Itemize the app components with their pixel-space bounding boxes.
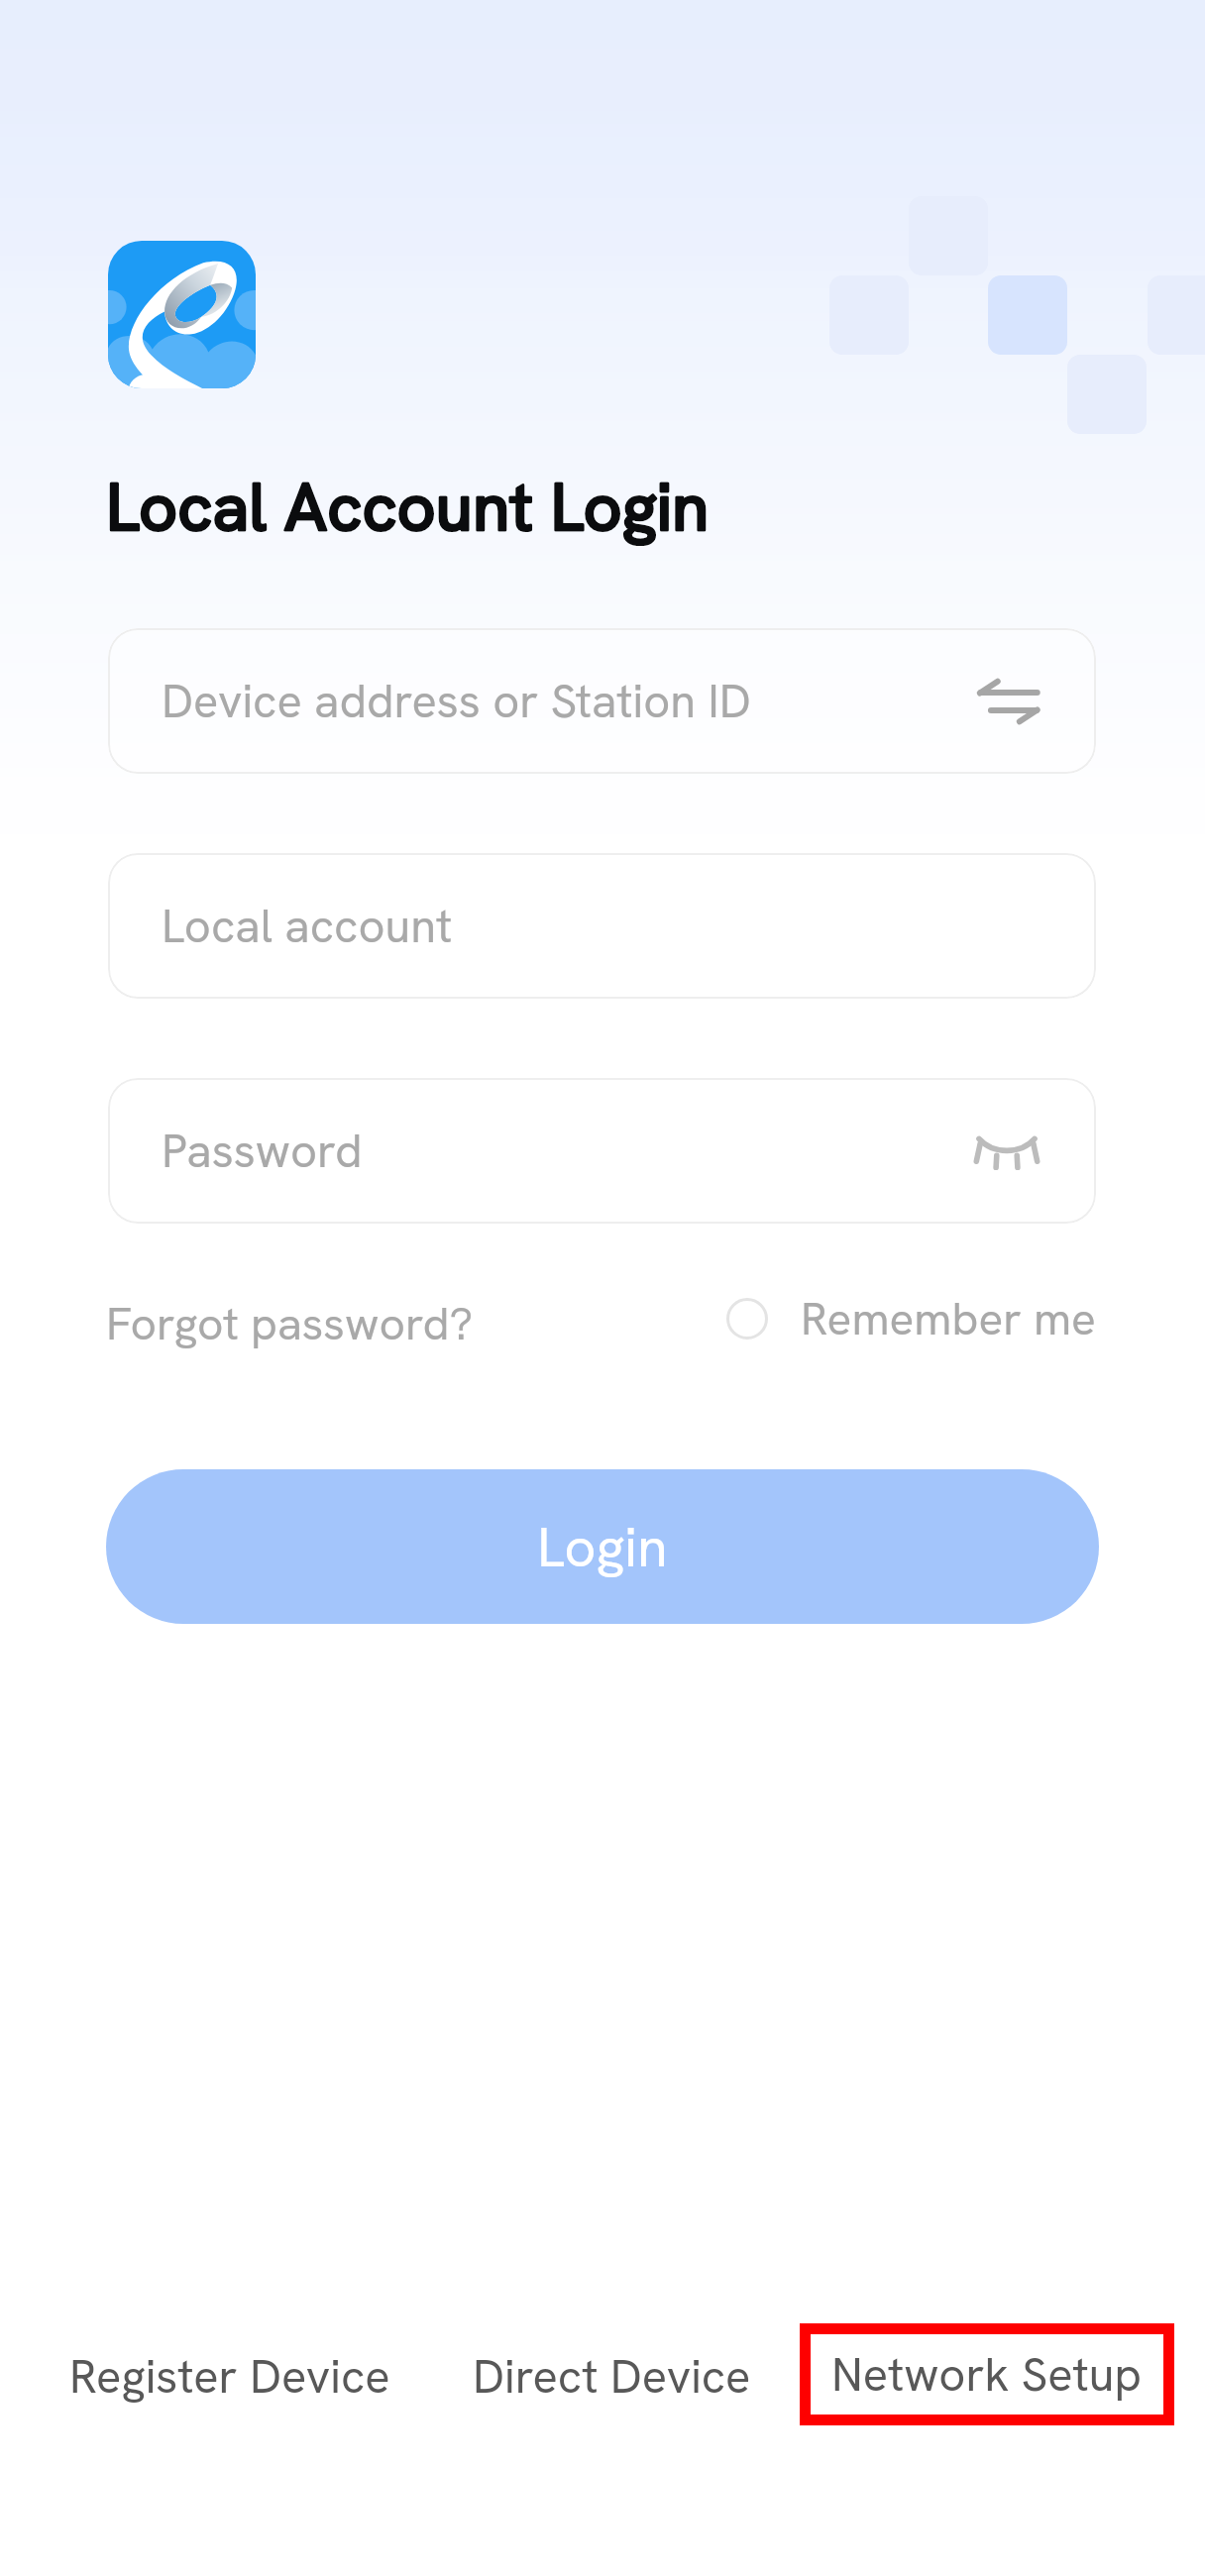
staticText: Remember me bbox=[801, 1289, 1096, 1348]
button[interactable]: Device address or Station ID bbox=[108, 628, 1096, 774]
button[interactable]: Network Setup bbox=[800, 2323, 1174, 2425]
button[interactable]: Local account bbox=[108, 853, 1096, 999]
staticText: Local Account Login bbox=[106, 463, 710, 551]
button[interactable]: Register Device bbox=[69, 2346, 390, 2407]
button[interactable]: Password bbox=[108, 1078, 1096, 1224]
staticText: Login bbox=[537, 1511, 668, 1583]
button[interactable]: Direct Device bbox=[473, 2346, 751, 2407]
other: App logo bbox=[108, 241, 256, 388]
staticText: Network Setup bbox=[831, 2344, 1143, 2405]
button[interactable]: Forgot password? bbox=[106, 1294, 474, 1353]
staticText: Password bbox=[162, 1121, 363, 1181]
button[interactable]: Switch input mode bbox=[975, 679, 1040, 724]
button[interactable]: Show password bbox=[974, 1134, 1040, 1168]
button[interactable]: Login bbox=[106, 1469, 1099, 1624]
staticText: Local account bbox=[162, 896, 453, 956]
button[interactable]: Remember me bbox=[726, 1289, 1096, 1348]
staticText: Local Account Login bbox=[106, 463, 710, 551]
staticText: Device address or Station ID bbox=[162, 671, 751, 731]
